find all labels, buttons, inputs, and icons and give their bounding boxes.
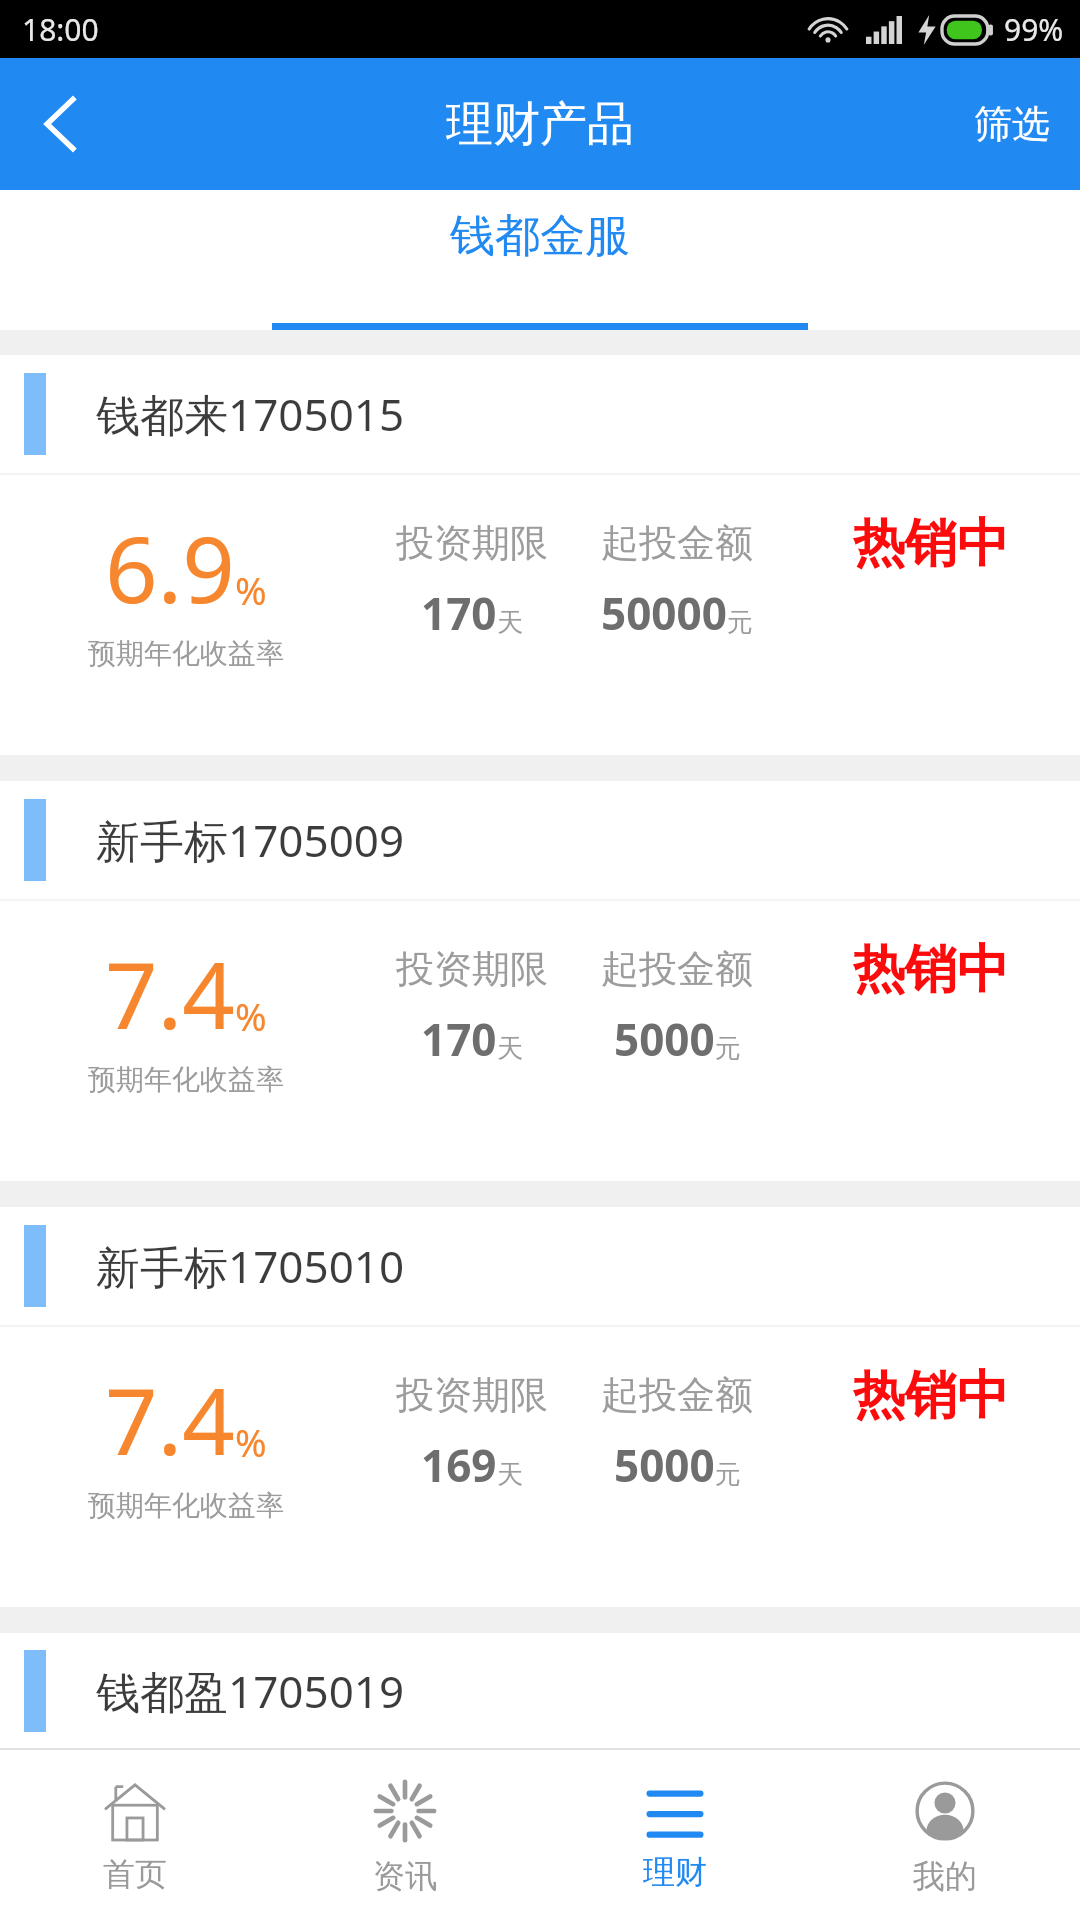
staticText: % — [235, 1416, 267, 1468]
staticText: 新手标1705009 — [96, 810, 405, 870]
staticText: 起投金额 — [601, 945, 753, 993]
button[interactable]: 返回 — [0, 58, 120, 190]
staticText: 99% — [1004, 9, 1064, 50]
staticText: 170 — [421, 1009, 497, 1069]
button[interactable]: 我的 — [810, 1750, 1080, 1920]
button[interactable]: 筛选 — [944, 58, 1080, 190]
button[interactable]: 首页 — [0, 1750, 270, 1920]
staticText: % — [235, 564, 267, 616]
staticText: 投资期限 — [396, 1371, 548, 1419]
staticText: 18:00 — [22, 9, 99, 50]
staticText: % — [235, 990, 267, 1042]
button[interactable]: 新手标1705010 — [0, 1207, 1080, 1607]
staticText: 理财 — [643, 1852, 707, 1892]
staticText: 钱都金服 — [450, 208, 630, 265]
staticText: 元 — [715, 1032, 741, 1065]
staticText: 投资期限 — [396, 519, 548, 567]
staticText: 170 — [421, 583, 497, 643]
staticText: 热销中 — [853, 937, 1009, 1003]
staticText: 新手标1705010 — [96, 1236, 405, 1296]
staticText: 天 — [497, 1032, 523, 1065]
button[interactable]: 钱都来1705015 — [0, 355, 1080, 755]
staticText: 元 — [715, 1458, 741, 1491]
staticText: 起投金额 — [601, 1371, 753, 1419]
staticText: 预期年化收益率 — [88, 1488, 284, 1523]
staticText: 我的 — [913, 1856, 977, 1896]
button[interactable]: 资讯 — [270, 1750, 540, 1920]
staticText: 钱都来1705015 — [96, 384, 405, 444]
staticText: 理财产品 — [446, 95, 634, 154]
staticText: 5000 — [614, 1009, 715, 1069]
staticText: 筛选 — [974, 100, 1050, 148]
staticText: 6.9 — [105, 505, 235, 630]
staticText: 资讯 — [373, 1856, 437, 1896]
staticText: 5000 — [614, 1435, 715, 1495]
staticText: 元 — [727, 606, 753, 639]
staticText: 50000 — [601, 583, 727, 643]
staticText: 169 — [421, 1435, 497, 1495]
staticText: 7.4 — [105, 931, 235, 1056]
staticText: 钱都盈1705019 — [96, 1661, 405, 1721]
staticText: 天 — [497, 1458, 523, 1491]
button[interactable]: 理财 — [540, 1750, 810, 1920]
staticText: 天 — [497, 606, 523, 639]
button[interactable]: 钱都金服 — [270, 190, 810, 330]
staticText: 7.4 — [105, 1357, 235, 1482]
staticText: 首页 — [103, 1854, 167, 1894]
staticText: 热销中 — [853, 1363, 1009, 1429]
staticText: 预期年化收益率 — [88, 636, 284, 671]
staticText: 投资期限 — [396, 945, 548, 993]
button[interactable]: 钱都盈1705019 — [0, 1633, 1080, 1748]
staticText: 热销中 — [853, 511, 1009, 577]
staticText: 起投金额 — [601, 519, 753, 567]
button[interactable]: 新手标1705009 — [0, 781, 1080, 1181]
staticText: 预期年化收益率 — [88, 1062, 284, 1097]
